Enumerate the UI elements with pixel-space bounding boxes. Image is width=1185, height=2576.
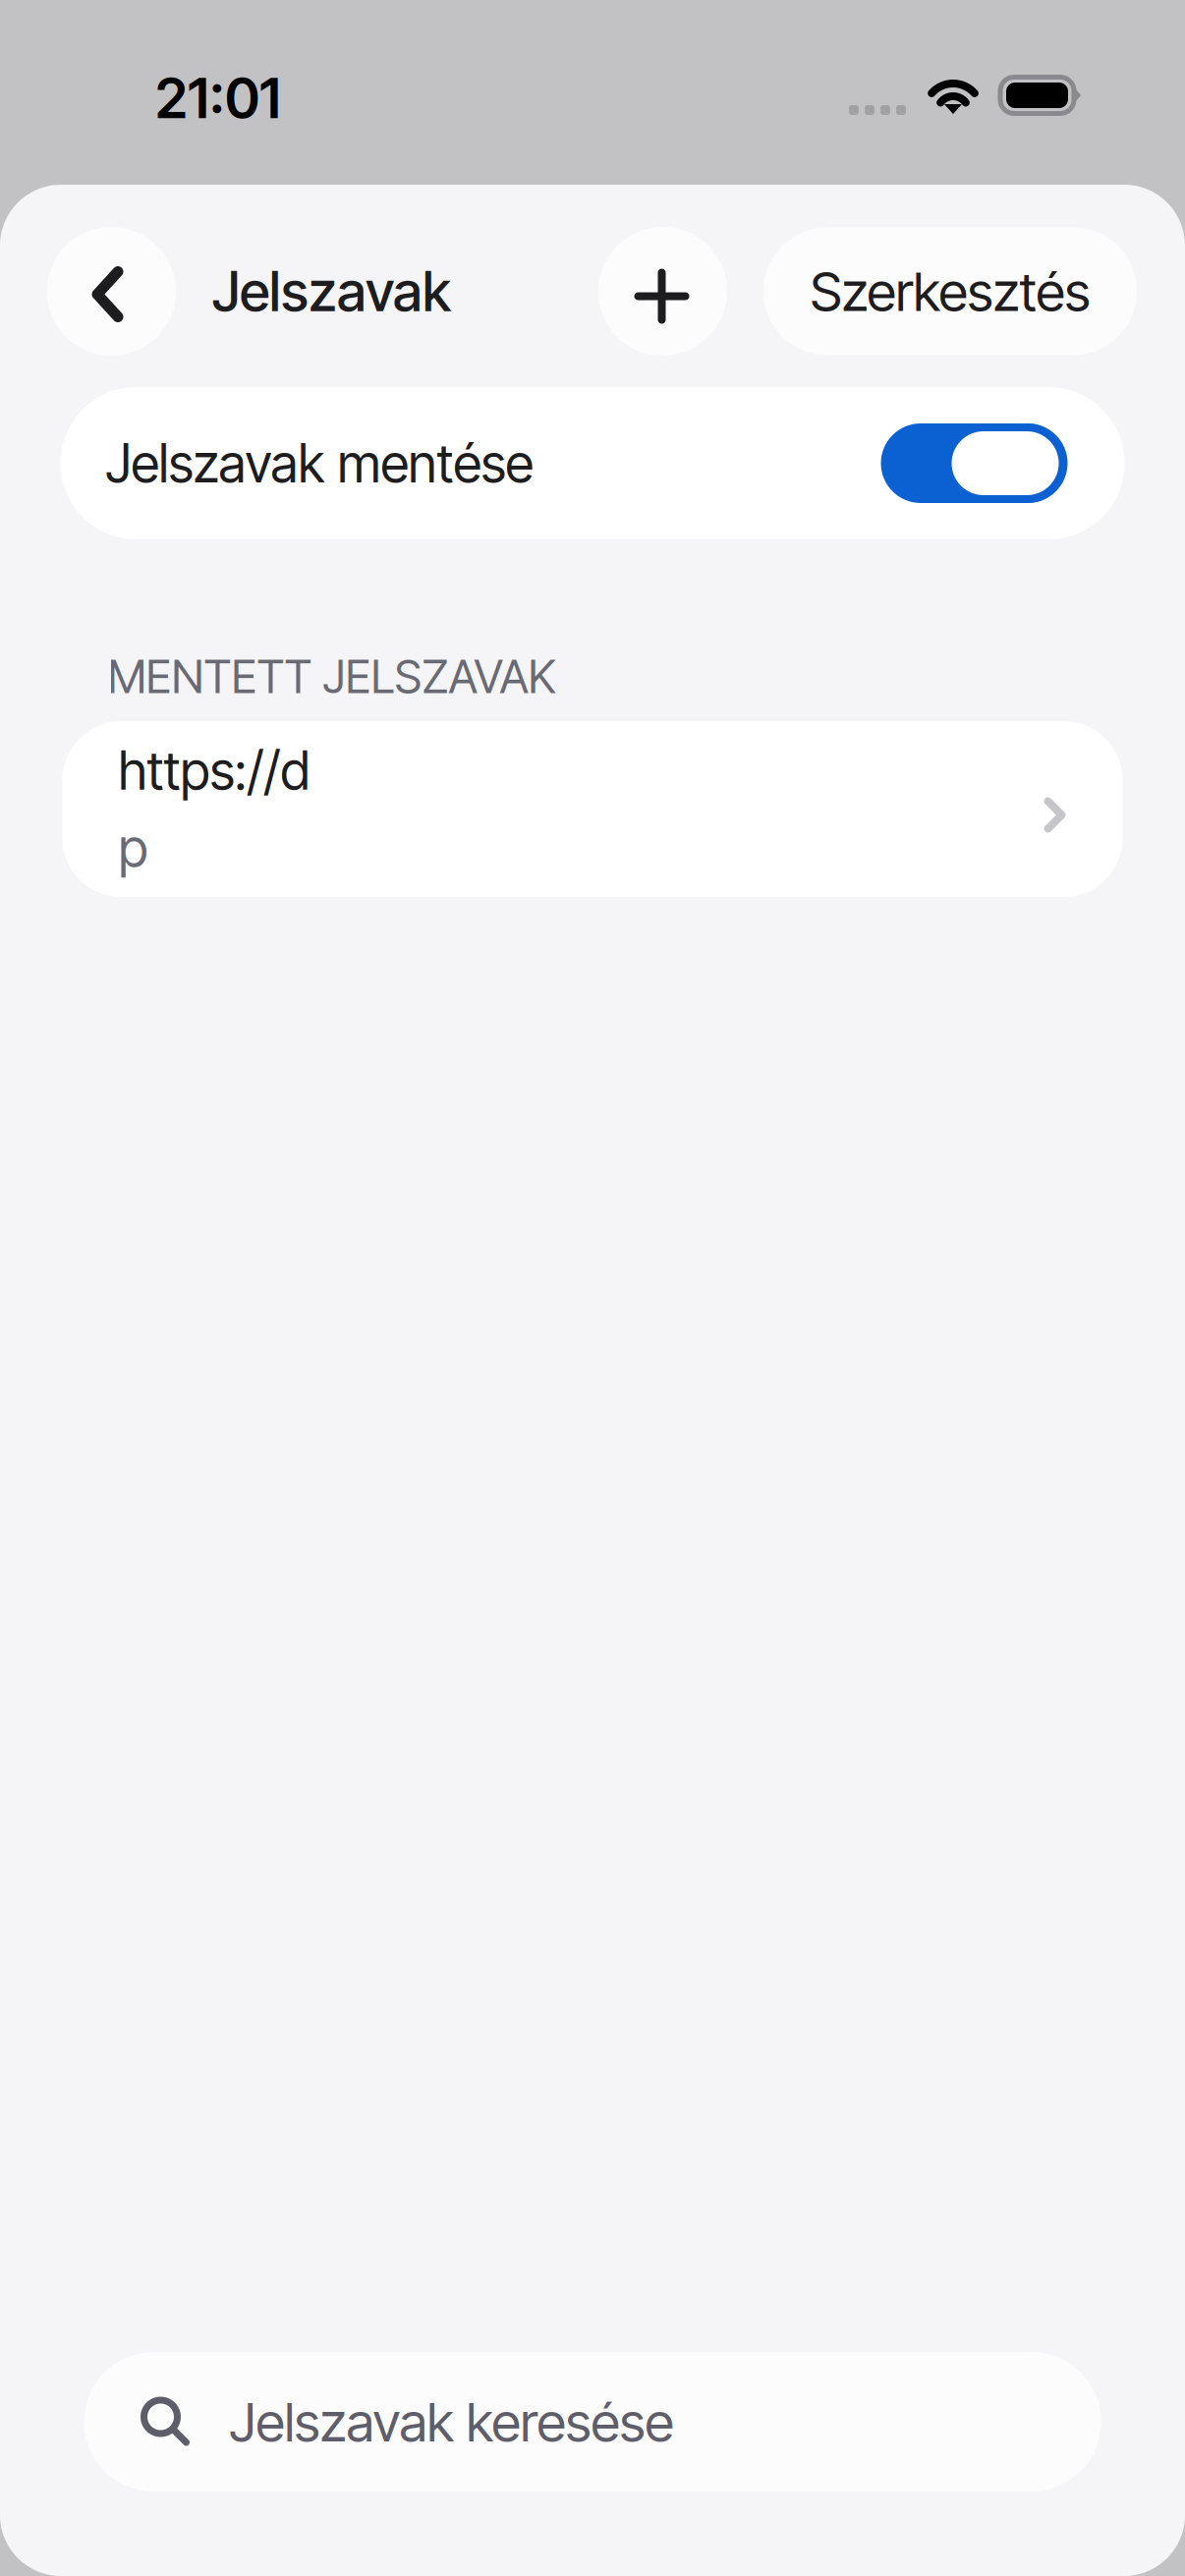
button[interactable]: Jelszavak keresése [84, 2352, 1101, 2492]
button[interactable]: https://d [62, 721, 1123, 897]
staticText: https://d [118, 739, 310, 802]
staticText: Jelszavak [212, 258, 451, 325]
staticText: 21:01 [155, 65, 281, 132]
staticText: Jelszavak mentése [106, 431, 533, 495]
button[interactable]: Vissza [47, 227, 176, 356]
staticText: MENTETT JELSZAVAK [108, 649, 556, 704]
button[interactable]: Jelszavak mentése [60, 387, 1125, 539]
staticText: Szerkesztés [810, 259, 1090, 324]
button[interactable]: Szerkesztés [763, 227, 1137, 355]
staticText: p [118, 816, 148, 879]
staticText: Jelszavak keresése [229, 2389, 674, 2454]
button[interactable]: Jelszó hozzáadása [598, 227, 727, 356]
